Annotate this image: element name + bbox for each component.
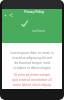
button[interactable]: Back (4, 14, 7, 17)
staticText: ut labore et dolore magna (5, 66, 59, 70)
staticText: read terms (32, 29, 46, 33)
staticText: amco laboris nisi ut aliquip (5, 83, 59, 87)
button[interactable]: Share (9, 13, 13, 17)
other: Logo (21, 20, 28, 27)
staticText: Privacy Policy (24, 10, 45, 14)
staticText: Ut enim ad minim veniam (5, 73, 59, 77)
staticText: quis nostrud exercitation ull (5, 78, 59, 82)
staticText: ex ea commodo (5, 88, 59, 89)
staticText: do eiusmod tempor incid (5, 61, 59, 65)
staticText: Lorem ipsum dolor sit amet co (5, 51, 59, 55)
staticText: nsectetur adipiscing elit sed (5, 56, 59, 60)
